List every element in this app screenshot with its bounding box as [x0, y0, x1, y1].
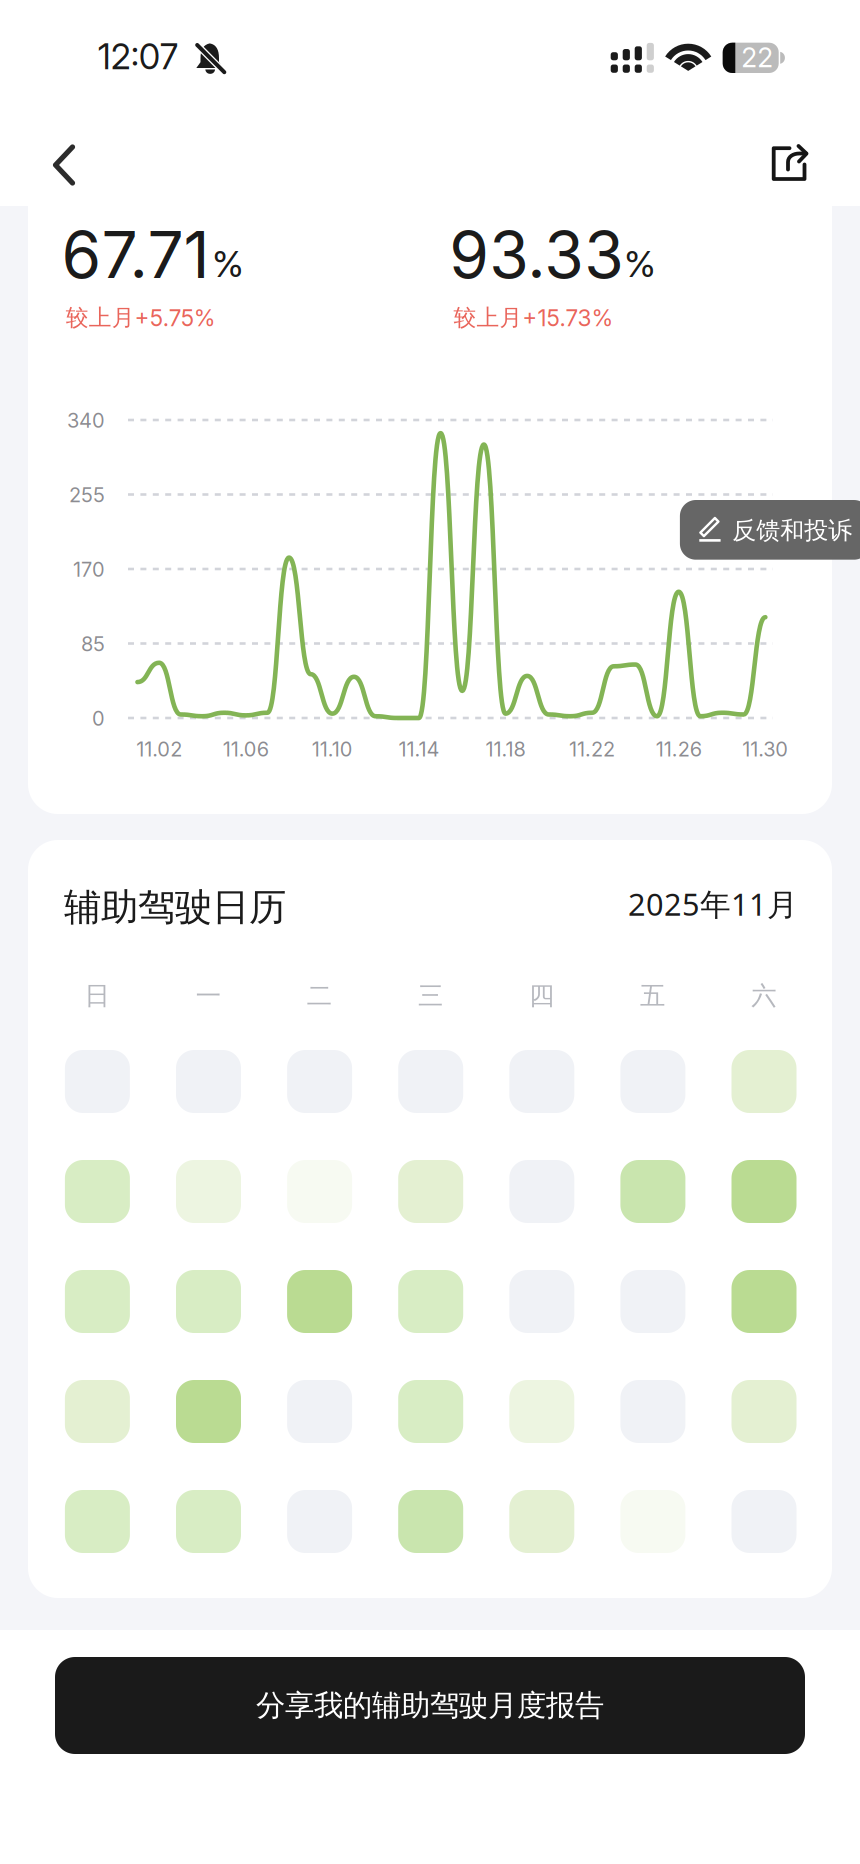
button[interactable]: 分享我的辅助驾驶月度报告 — [55, 1657, 805, 1754]
staticText: 五 — [640, 980, 665, 1012]
staticText: 三 — [418, 980, 443, 1012]
staticText: 22 — [741, 41, 773, 74]
staticText: 11.18 — [485, 737, 525, 761]
staticText: 0 — [92, 706, 105, 731]
button[interactable]: Back — [28, 129, 100, 201]
staticText: 11.30 — [742, 737, 788, 761]
staticText: 340 — [67, 408, 105, 433]
staticText: 2025年11月 — [628, 883, 798, 925]
staticText: 六 — [751, 980, 776, 1012]
staticText: 11.10 — [312, 737, 353, 761]
staticText: 12:07 — [98, 36, 178, 77]
staticText: 较上月+15.73% — [454, 303, 614, 332]
staticText: 67.71 — [61, 216, 209, 293]
staticText: 11.22 — [569, 737, 615, 761]
staticText: 255 — [69, 483, 105, 507]
staticText: 一 — [196, 980, 221, 1012]
staticText: 二 — [307, 980, 332, 1012]
staticText: 辅助驾驶日历 — [64, 884, 286, 931]
staticText: 较上月+5.75% — [66, 303, 216, 332]
staticText: 分享我的辅助驾驶月度报告 — [256, 1687, 604, 1724]
staticText: 反馈和投诉 — [732, 515, 852, 546]
button[interactable]: Share — [754, 128, 826, 200]
staticText: 日 — [85, 980, 110, 1012]
staticText: 11.26 — [656, 737, 702, 761]
staticText: 四 — [529, 980, 554, 1012]
staticText: 11.02 — [136, 737, 182, 761]
staticText: 11.14 — [398, 737, 439, 761]
staticText: % — [212, 242, 244, 286]
staticText: 85 — [81, 632, 105, 656]
staticText: 11.06 — [223, 737, 269, 761]
staticText: 93.33 — [449, 216, 624, 293]
staticText: % — [624, 242, 656, 286]
staticText: 170 — [73, 557, 105, 582]
button[interactable]: 反馈和投诉 — [0, 0, 860, 1864]
